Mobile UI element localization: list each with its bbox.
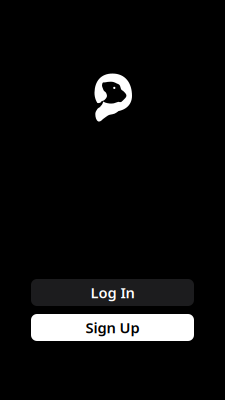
staticText: Sign Up bbox=[85, 318, 139, 337]
button[interactable]: Sign Up bbox=[31, 314, 194, 341]
staticText: Log In bbox=[90, 283, 134, 302]
button[interactable]: Log In bbox=[31, 279, 194, 306]
